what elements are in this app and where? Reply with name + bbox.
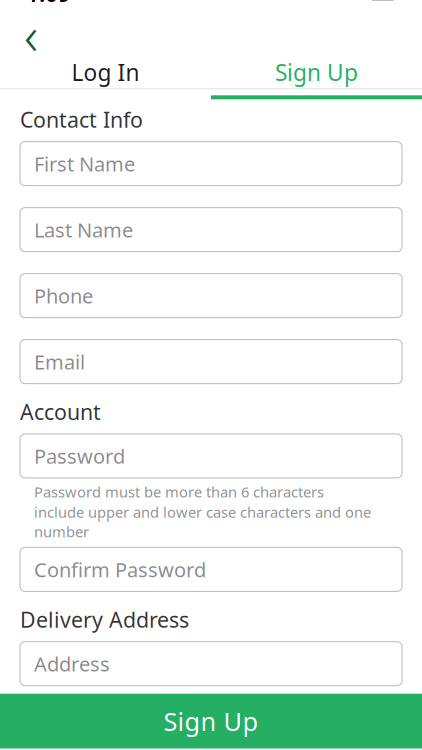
staticText: Contact Info bbox=[20, 105, 143, 134]
button[interactable]: Email bbox=[20, 340, 402, 384]
staticText: Last Name bbox=[34, 216, 133, 243]
button[interactable]: Last Name bbox=[20, 208, 402, 252]
button[interactable]: Confirm Password bbox=[20, 547, 402, 591]
button[interactable]: First Name bbox=[20, 142, 402, 186]
button[interactable]: Password bbox=[20, 434, 402, 478]
button[interactable]: Phone bbox=[20, 274, 402, 318]
staticText: Log In bbox=[71, 57, 139, 87]
staticText: Sign Up bbox=[275, 57, 358, 87]
staticText: Delivery Address bbox=[20, 605, 189, 634]
button[interactable]: Log In bbox=[0, 55, 211, 93]
staticText: ‹ bbox=[24, 0, 38, 70]
button[interactable]: Sign Up bbox=[211, 55, 422, 93]
staticText: include upper and lower case characters … bbox=[34, 502, 371, 541]
staticText: Password bbox=[34, 443, 125, 469]
staticText: Sign Up bbox=[163, 704, 258, 738]
staticText: 1:09 bbox=[26, 0, 71, 8]
button[interactable]: Back bbox=[8, 13, 54, 55]
staticText: Account bbox=[20, 398, 101, 426]
staticText: Phone bbox=[34, 282, 93, 309]
button[interactable]: Address bbox=[20, 642, 402, 686]
staticText: First Name bbox=[34, 150, 135, 177]
staticText: Address bbox=[34, 650, 110, 677]
staticText: Confirm Password bbox=[34, 556, 206, 583]
staticText: Email bbox=[34, 348, 85, 375]
staticText: Password must be more than 6 characters bbox=[34, 482, 324, 501]
button[interactable]: Sign Up bbox=[0, 694, 422, 749]
